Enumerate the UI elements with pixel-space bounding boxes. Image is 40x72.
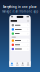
button[interactable] (10, 47, 30, 51)
button[interactable] (10, 39, 29, 43)
button[interactable] (10, 32, 29, 36)
button[interactable] (10, 27, 30, 31)
button[interactable]: Home (9, 62, 15, 65)
button[interactable]: Profile (25, 62, 31, 65)
button[interactable]: Alerts (20, 62, 25, 65)
button[interactable] (10, 43, 29, 47)
staticText: Everything in one place (3, 5, 37, 9)
button[interactable]: Search (15, 62, 20, 65)
staticText: manage it all from one app (1, 10, 38, 13)
button[interactable] (10, 23, 29, 27)
